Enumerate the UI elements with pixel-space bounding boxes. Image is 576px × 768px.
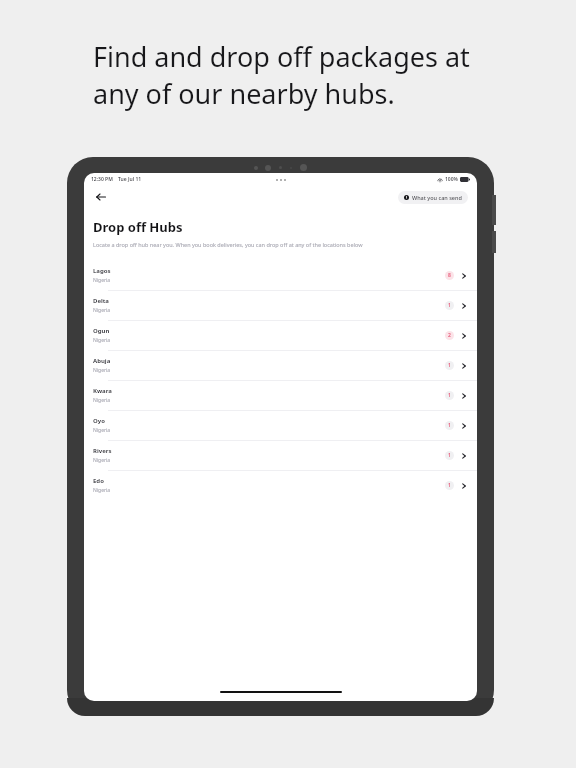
other: Open Delta bbox=[460, 302, 468, 310]
staticText: Oyo bbox=[93, 417, 105, 425]
button[interactable]: Ogun bbox=[84, 321, 477, 350]
staticText: 2 bbox=[448, 332, 451, 339]
staticText: Nigeria bbox=[93, 307, 111, 314]
staticText: 1 bbox=[448, 302, 451, 309]
staticText: Nigeria bbox=[93, 457, 111, 464]
staticText: Nigeria bbox=[93, 277, 111, 284]
staticText: 1 bbox=[448, 452, 451, 459]
staticText: Locate a drop off hub near you. When you… bbox=[93, 241, 363, 248]
other: Open Ogun bbox=[460, 332, 468, 340]
staticText: Nigeria bbox=[93, 427, 111, 434]
staticText: Abuja bbox=[93, 357, 111, 365]
staticText: Nigeria bbox=[93, 397, 111, 404]
button[interactable]: Kwara bbox=[84, 381, 477, 410]
other: Open Kwara bbox=[460, 392, 468, 400]
button[interactable]: Edo bbox=[84, 471, 477, 500]
staticText: Drop off Hubs bbox=[93, 218, 183, 236]
button[interactable]: Rivers bbox=[84, 441, 477, 470]
button[interactable]: Lagos bbox=[84, 261, 477, 290]
staticText: Nigeria bbox=[93, 367, 111, 374]
other: Open Lagos bbox=[460, 272, 468, 280]
staticText: 12:30 PM bbox=[91, 176, 113, 183]
staticText: any of our nearby hubs. bbox=[93, 75, 395, 112]
staticText: Find and drop off packages at bbox=[93, 38, 470, 75]
staticText: Kwara bbox=[93, 387, 112, 395]
other: Open Abuja bbox=[460, 362, 468, 370]
staticText: Rivers bbox=[93, 447, 112, 455]
staticText: What you can send bbox=[412, 194, 462, 201]
staticText: 8 bbox=[448, 272, 451, 279]
staticText: Nigeria bbox=[93, 487, 111, 494]
staticText: 1 bbox=[448, 422, 451, 429]
button[interactable]: Back bbox=[93, 189, 109, 205]
staticText: Tue Jul 11 bbox=[118, 176, 142, 183]
button[interactable]: What you can send bbox=[398, 191, 468, 204]
button[interactable]: Abuja bbox=[84, 351, 477, 380]
other: Open Edo bbox=[460, 482, 468, 490]
staticText: Edo bbox=[93, 477, 104, 485]
staticText: Nigeria bbox=[93, 337, 111, 344]
button[interactable]: Oyo bbox=[84, 411, 477, 440]
other: Open Oyo bbox=[460, 422, 468, 430]
staticText: Delta bbox=[93, 297, 109, 305]
other: Open Rivers bbox=[460, 452, 468, 460]
staticText: Lagos bbox=[93, 267, 111, 275]
staticText: 1 bbox=[448, 482, 451, 489]
button[interactable]: Delta bbox=[84, 291, 477, 320]
staticText: 1 bbox=[448, 392, 451, 399]
staticText: Ogun bbox=[93, 327, 110, 335]
staticText: 100% bbox=[445, 176, 458, 183]
staticText: 1 bbox=[448, 362, 451, 369]
